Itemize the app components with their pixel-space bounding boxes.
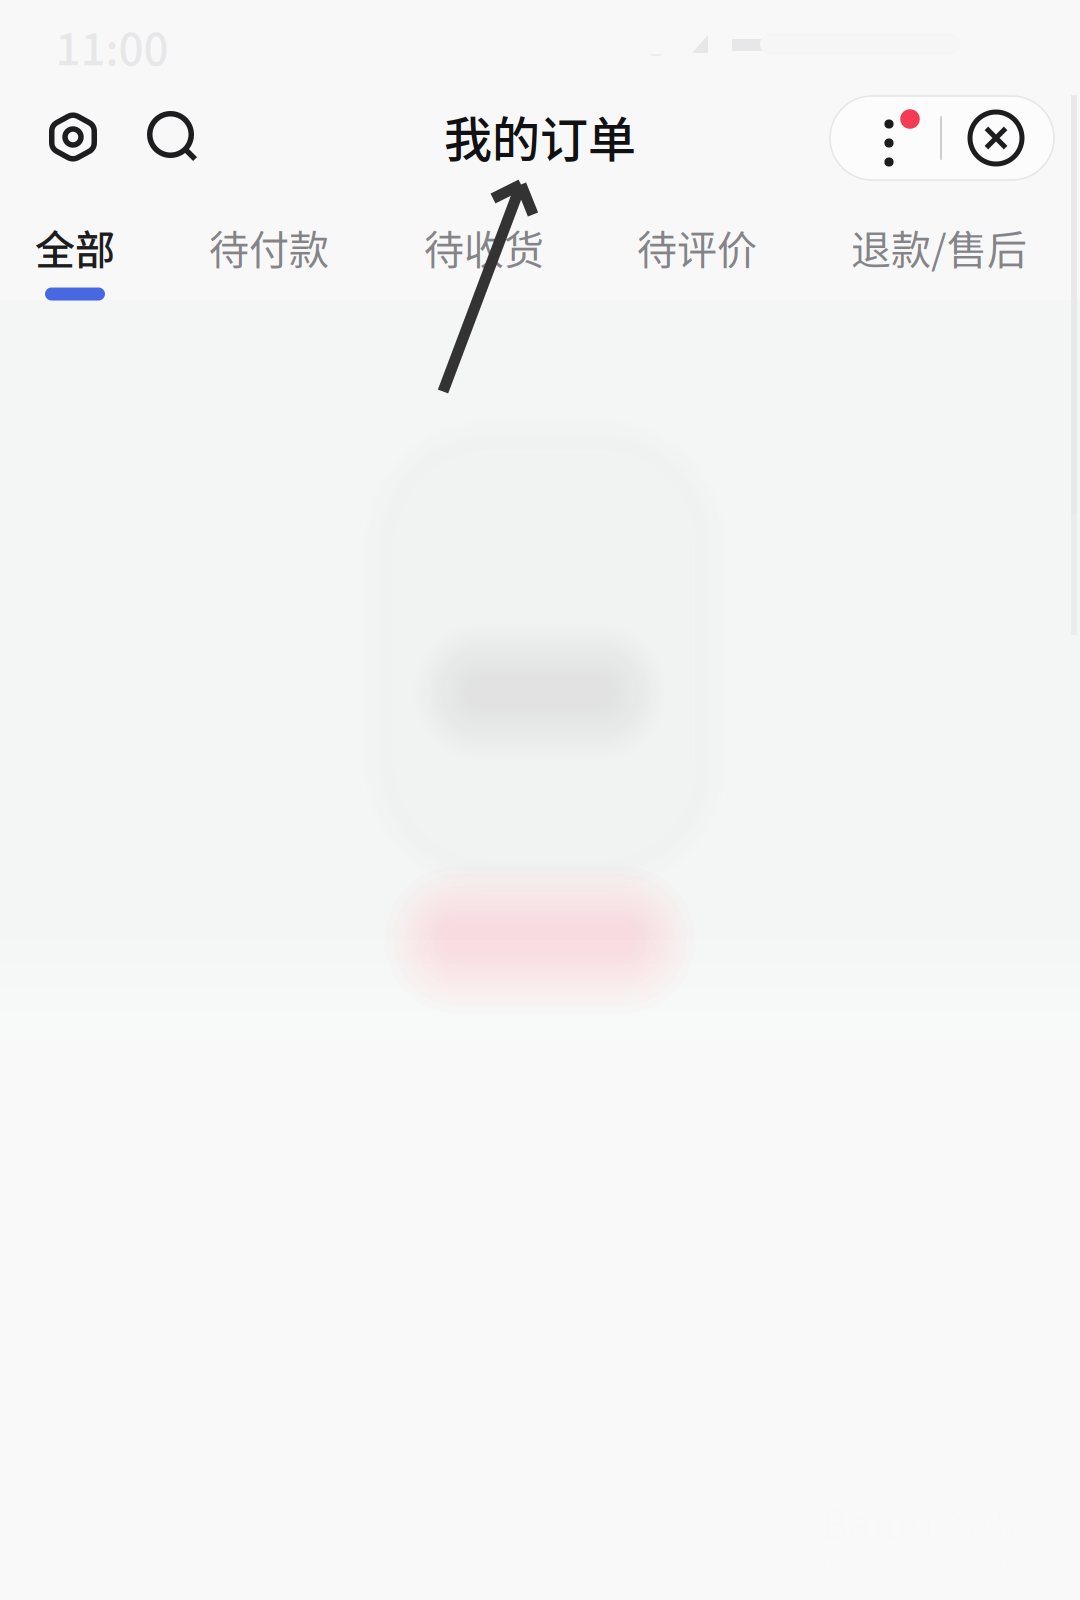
- staticText: 11:00: [55, 14, 168, 78]
- button[interactable]: Search: [134, 95, 220, 187]
- button[interactable]: Mini program home: [30, 91, 116, 183]
- button[interactable]: 待收货: [374, 193, 594, 303]
- button[interactable]: 退款/售后: [829, 193, 1049, 303]
- staticText: 退款/售后: [851, 218, 1027, 276]
- button[interactable]: 全部: [0, 193, 185, 303]
- button[interactable]: 待付款: [159, 193, 379, 303]
- staticText: 我的订单: [444, 101, 636, 171]
- button[interactable]: More options: [849, 101, 949, 185]
- staticText: 全部: [35, 218, 115, 276]
- staticText: 待评价: [637, 218, 757, 276]
- staticText: 待收货: [424, 218, 544, 276]
- button[interactable]: 待评价: [587, 193, 807, 303]
- button[interactable]: Close: [946, 96, 1046, 180]
- staticText: 待付款: [209, 218, 329, 276]
